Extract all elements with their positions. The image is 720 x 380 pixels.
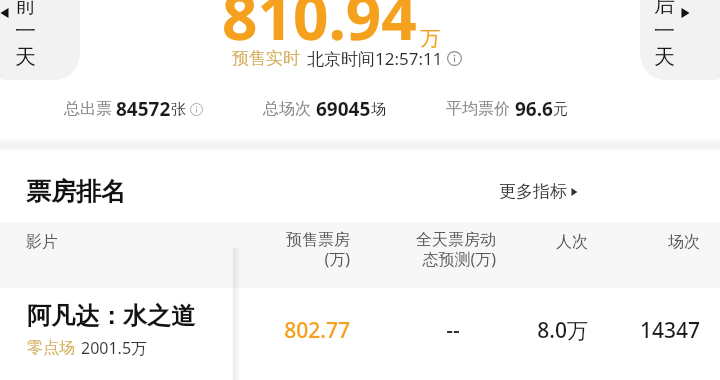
staticText: 前 <box>15 0 36 18</box>
staticText: 810.94 <box>222 0 417 58</box>
staticText: 全天票房动 态预测(万) <box>380 230 496 270</box>
staticText: 影片 <box>26 232 58 252</box>
staticText: 84572 <box>116 96 171 122</box>
staticText: 场次 <box>630 232 700 252</box>
staticText: 北京时间12:57:11 <box>307 47 443 70</box>
staticText: 张 <box>171 100 186 119</box>
other: 出票说明 <box>190 103 203 116</box>
staticText: 14347 <box>630 316 700 345</box>
staticText: 802.77 <box>266 316 350 345</box>
staticText: -- <box>410 316 496 345</box>
staticText: 96.6 <box>515 96 553 122</box>
staticText: 8.0万 <box>520 316 588 345</box>
staticText: 一 <box>15 18 36 44</box>
staticText: 总场次 <box>263 99 311 119</box>
staticText: 人次 <box>520 232 588 252</box>
staticText: 场 <box>371 100 386 119</box>
button[interactable]: 总出票 <box>64 96 203 122</box>
staticText: 天 <box>15 44 36 70</box>
staticText: 万 <box>420 26 440 51</box>
staticText: 元 <box>553 100 568 119</box>
staticText: 69045 <box>316 96 371 122</box>
button[interactable]: 前 <box>0 0 80 80</box>
staticText: 总出票 <box>64 99 112 119</box>
staticText: 天 <box>654 44 675 70</box>
staticText: 预售实时 <box>232 48 300 69</box>
staticText: 阿凡达：水之道 <box>27 301 195 331</box>
button[interactable]: 更多指标 <box>499 181 578 202</box>
staticText: 2001.5万 <box>81 337 148 359</box>
button[interactable]: 总场次 <box>263 96 386 122</box>
staticText: 更多指标 <box>499 181 567 202</box>
staticText: 票房排名 <box>26 176 126 207</box>
staticText: 平均票价 <box>446 99 510 119</box>
staticText: 预售票房 (万) <box>266 230 350 270</box>
button[interactable]: 平均票价 <box>446 96 568 122</box>
staticText: 零点场 <box>27 338 75 358</box>
button[interactable]: 阿凡达：水之道 <box>0 288 720 380</box>
staticText: 后 <box>654 0 675 18</box>
staticText: 一 <box>654 18 675 44</box>
button[interactable]: 说明 <box>447 51 462 66</box>
button[interactable]: 后 <box>640 0 720 80</box>
